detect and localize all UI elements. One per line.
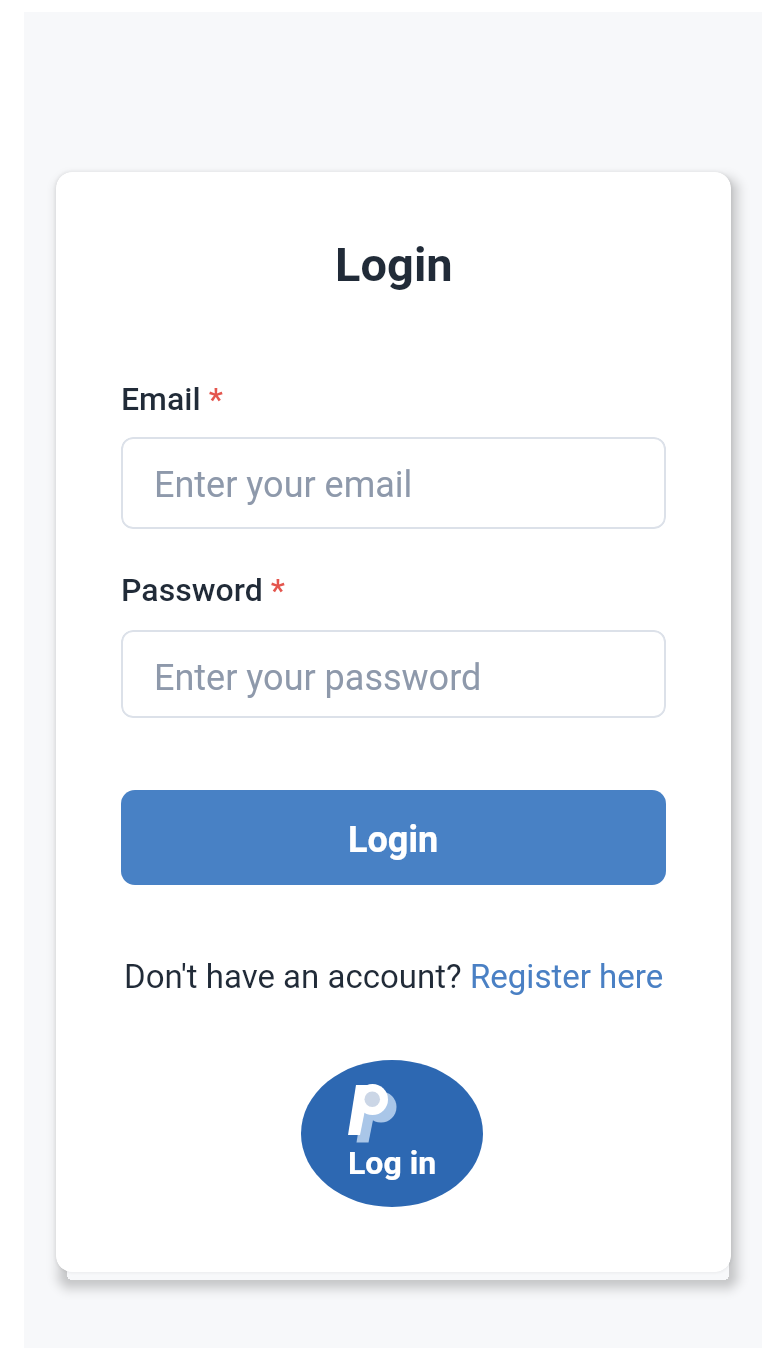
- button[interactable]: Enter your email: [121, 437, 666, 529]
- staticText: Login: [335, 237, 453, 292]
- staticText: Enter your email: [154, 464, 413, 506]
- button[interactable]: Register here: [470, 957, 664, 996]
- staticText: Log in: [348, 1144, 437, 1182]
- staticText: Password *: [121, 571, 285, 609]
- button[interactable]: Enter your password: [121, 630, 666, 718]
- button[interactable]: Log in: [301, 1060, 483, 1207]
- staticText: Email *: [121, 380, 223, 418]
- button[interactable]: Login: [121, 790, 666, 885]
- staticText: Don't have an account?: [124, 957, 470, 996]
- staticText: Enter your password: [154, 657, 482, 699]
- staticText: Login: [348, 819, 439, 861]
